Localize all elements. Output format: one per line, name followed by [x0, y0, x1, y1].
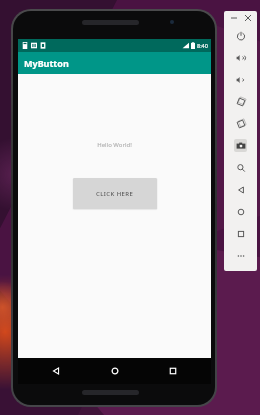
- button[interactable]: Power: [224, 24, 257, 46]
- button[interactable]: Minimize: [228, 12, 239, 23]
- button[interactable]: Rotate right: [224, 112, 257, 134]
- button[interactable]: Volume up: [224, 46, 257, 68]
- button[interactable]: CLICK HERE: [73, 178, 157, 209]
- button[interactable]: Rotate left: [224, 90, 257, 112]
- button[interactable]: Home: [94, 358, 136, 384]
- staticText: MyButton: [24, 57, 69, 69]
- button[interactable]: Back: [224, 178, 257, 200]
- button[interactable]: Take screenshot: [224, 134, 257, 156]
- button[interactable]: Back: [35, 358, 77, 384]
- button[interactable]: Recent apps: [152, 358, 194, 384]
- button[interactable]: Volume down: [224, 68, 257, 90]
- button[interactable]: More: [224, 244, 257, 266]
- staticText: Hello World!: [97, 141, 132, 149]
- button[interactable]: Overview: [224, 222, 257, 244]
- button[interactable]: Close: [242, 12, 253, 23]
- staticText: CLICK HERE: [96, 190, 134, 198]
- button[interactable]: Zoom: [224, 156, 257, 178]
- staticText: 8:40: [197, 42, 208, 49]
- button[interactable]: Home: [224, 200, 257, 222]
